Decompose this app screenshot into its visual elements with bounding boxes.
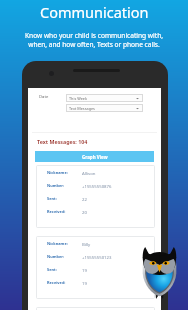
other: Mascot [142, 246, 177, 299]
button[interactable]: Nickname: [37, 237, 154, 298]
button[interactable]: Nickname: [37, 166, 154, 227]
staticText: Know who your child is communicating wit… [25, 31, 163, 49]
staticText: Number: [47, 254, 65, 259]
button[interactable]: This Week [66, 94, 143, 102]
staticText: Number: [47, 183, 65, 188]
staticText: Text Messages [69, 106, 95, 111]
staticText: Billy [82, 241, 91, 247]
staticText: Sent: [47, 196, 57, 201]
staticText: 19 [82, 280, 87, 286]
button[interactable]: Graph View [35, 151, 154, 162]
staticText: This Week [69, 96, 88, 101]
staticText: Graph View [82, 154, 108, 160]
staticText: Text Messages: 104 [37, 138, 88, 145]
staticText: Date [39, 94, 49, 100]
staticText: Communication [40, 2, 149, 22]
staticText: 20 [82, 209, 87, 215]
staticText: 19 [82, 267, 87, 273]
staticText: Sent: [47, 267, 57, 272]
staticText: +15555550123 [82, 254, 112, 260]
button[interactable]: Text Messages [66, 104, 143, 112]
staticText: +15555550876 [82, 183, 112, 189]
staticText: Received: [47, 280, 66, 285]
staticText: Nickname: [47, 241, 68, 246]
staticText: Nickname: [47, 170, 68, 175]
staticText: 22 [82, 196, 87, 202]
staticText: Received: [47, 209, 66, 214]
staticText: Allison [82, 170, 96, 176]
